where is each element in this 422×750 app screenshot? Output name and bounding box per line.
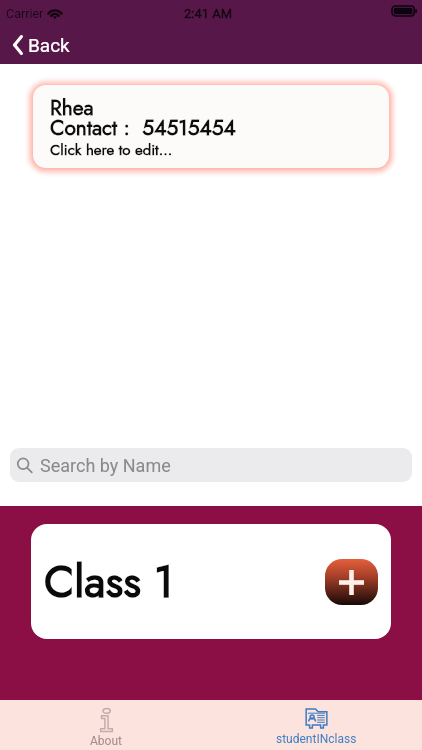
button[interactable]: Search by Name [10, 448, 412, 482]
button[interactable]: studentINclass [211, 700, 422, 750]
staticText: About [90, 734, 122, 748]
button[interactable]: About [0, 700, 211, 750]
staticText: Search by Name [40, 455, 171, 476]
button[interactable]: Class 1 [31, 524, 391, 639]
staticText: 2:41 AM [184, 6, 233, 21]
staticText: Contact : 54515454 [50, 113, 236, 143]
staticText: Back [28, 34, 70, 56]
staticText: Carrier [6, 6, 44, 21]
button[interactable]: Add class [325, 559, 378, 605]
button[interactable]: Back [0, 31, 84, 59]
staticText: Rhea [50, 93, 94, 123]
staticText: studentINclass [276, 732, 357, 746]
staticText: Click here to edit... [50, 139, 173, 161]
button[interactable]: Rhea [33, 85, 389, 168]
staticText: Class 1 [44, 550, 174, 614]
